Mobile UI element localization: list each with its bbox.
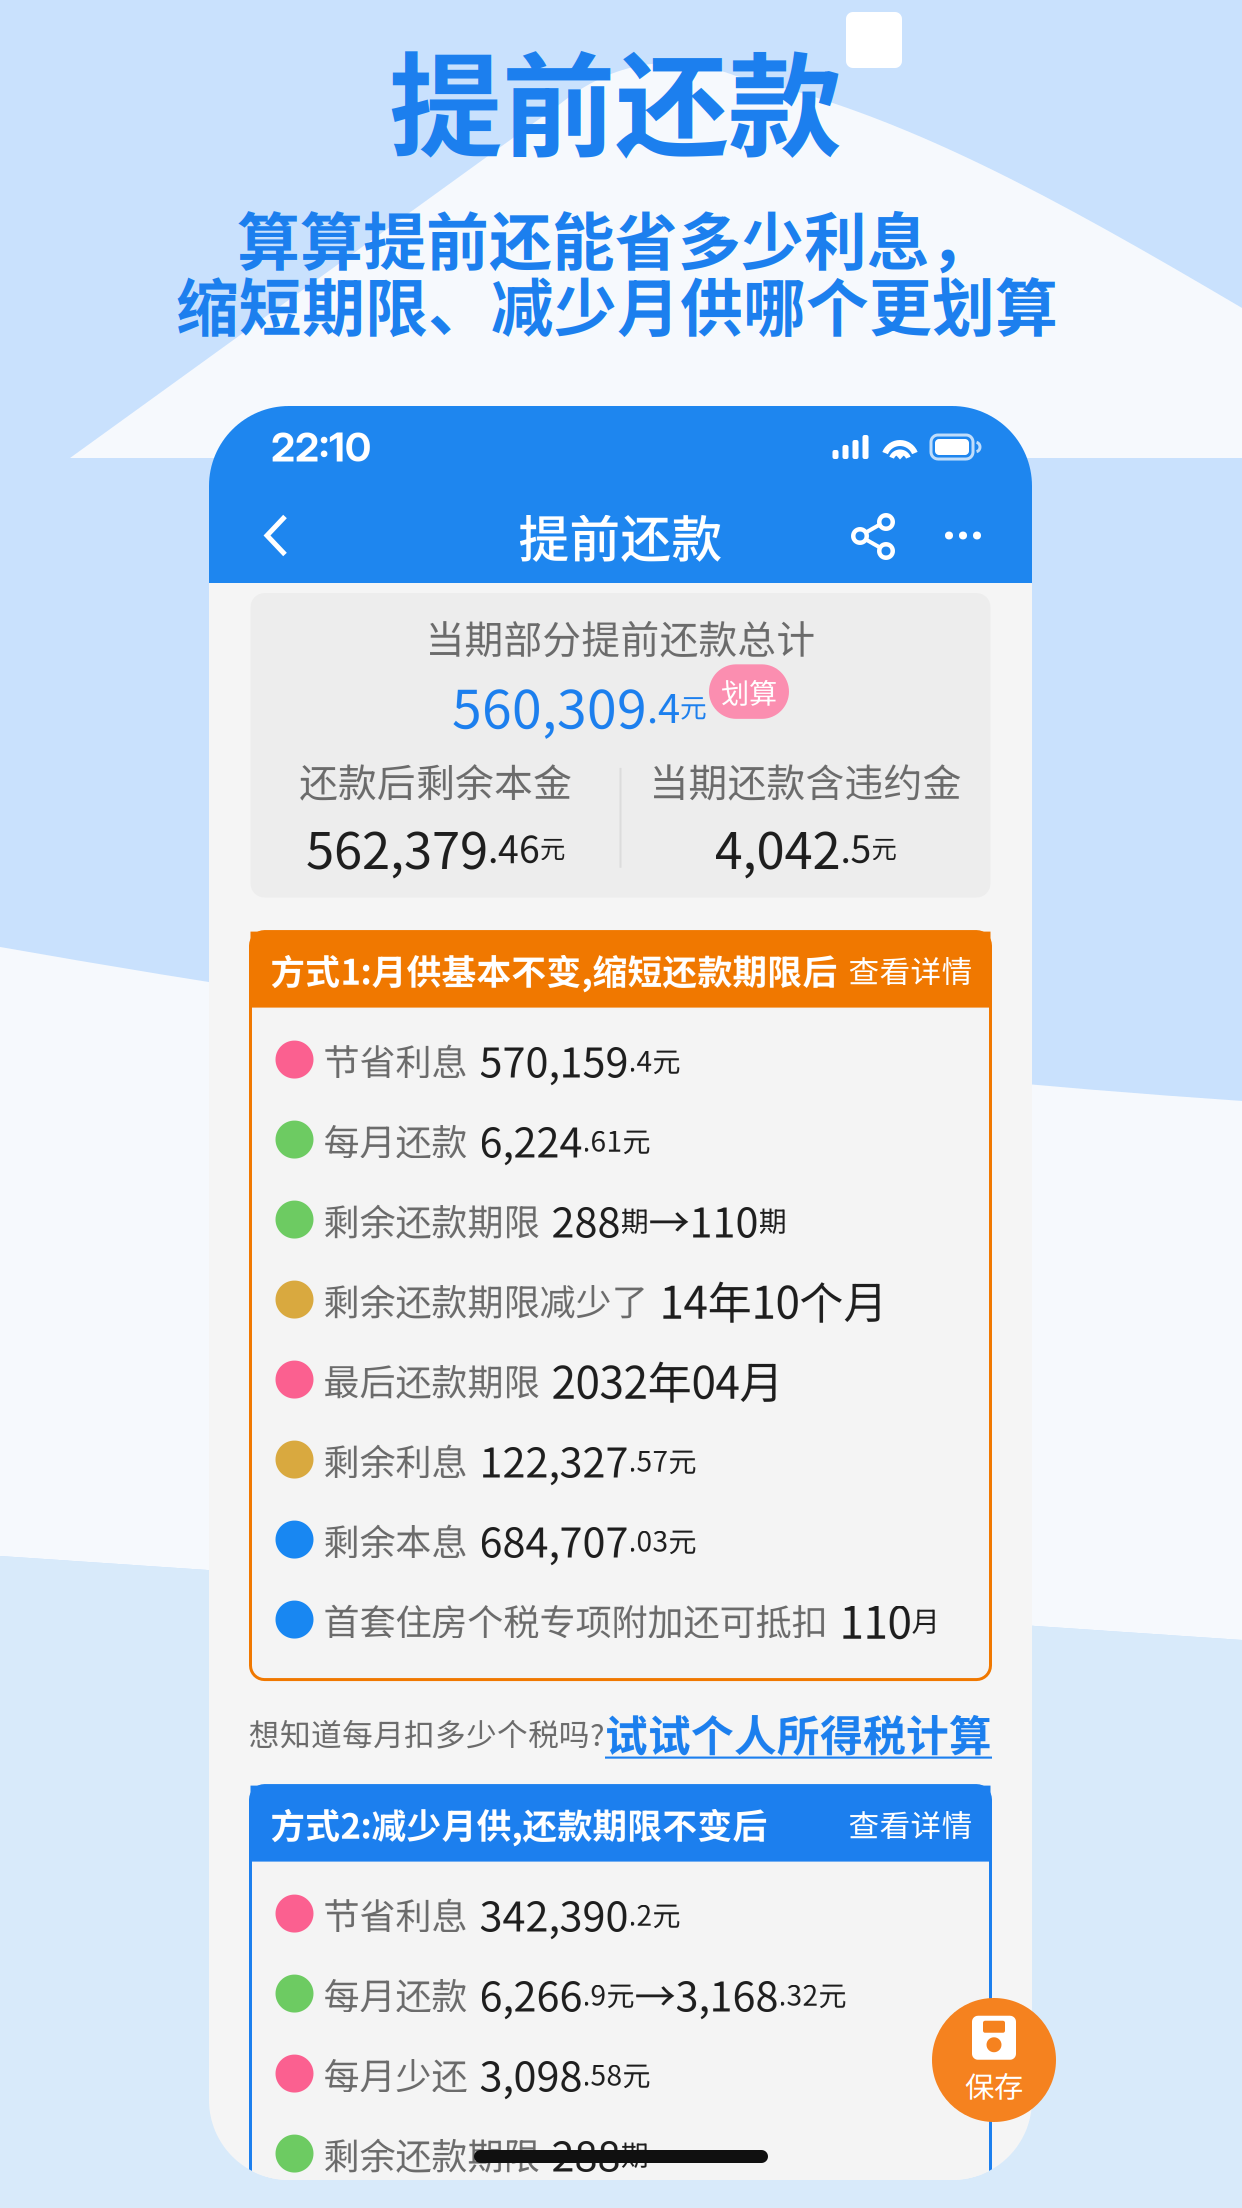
- staticText: .46: [488, 820, 540, 874]
- staticText: .9: [582, 1973, 606, 2014]
- staticText: 元: [652, 1893, 680, 1934]
- staticText: 元: [622, 1119, 650, 1160]
- staticText: 期: [620, 1199, 648, 1240]
- staticText: 方式2:减少月供,还款期限不变后: [270, 1798, 767, 1849]
- staticText: 最后还款期限: [323, 1353, 539, 1406]
- staticText: .4: [647, 677, 680, 734]
- staticText: 节省利息: [323, 1887, 467, 1940]
- staticText: 4,042: [714, 810, 840, 884]
- staticText: 剩余利息: [323, 1433, 467, 1486]
- staticText: 当期还款含违约金: [649, 752, 961, 808]
- staticText: 缩短期限、减少月供哪个更划算: [176, 258, 1058, 349]
- button[interactable]: 方式2:减少月供,还款期限不变后: [250, 1786, 990, 1862]
- staticText: 3,168: [675, 1964, 778, 2023]
- staticText: 剩余本息: [323, 1513, 467, 1566]
- staticText: 元: [818, 1973, 846, 2014]
- staticText: 期: [758, 1199, 786, 1240]
- staticText: 当期部分提前还款总计: [425, 609, 815, 665]
- staticText: 288: [551, 2124, 620, 2183]
- staticText: 570,159: [479, 1030, 628, 1089]
- staticText: .4: [628, 1039, 652, 1080]
- staticText: .03: [628, 1519, 668, 1560]
- staticText: .61: [582, 1119, 622, 1160]
- staticText: →: [648, 1190, 689, 1249]
- staticText: 算算提前还能省多少利息，: [237, 192, 993, 283]
- staticText: 110: [839, 1588, 911, 1651]
- staticText: 每月还款: [323, 1113, 467, 1166]
- button[interactable]: 更多: [918, 490, 1008, 580]
- staticText: 684,707: [479, 1510, 628, 1569]
- staticText: .32: [778, 1973, 818, 2014]
- button[interactable]: 方式1:月供基本不变,缩短还款期限后: [250, 932, 990, 1008]
- staticText: 14年10个月: [659, 1268, 887, 1331]
- staticText: 110: [689, 1190, 758, 1249]
- staticText: 每月还款: [323, 1967, 467, 2020]
- staticText: 提前还款: [389, 16, 841, 180]
- staticText: 122,327: [479, 1430, 628, 1489]
- staticText: 剩余还款期限: [323, 1193, 539, 1246]
- staticText: 2032年04月: [551, 1348, 783, 1411]
- staticText: .2: [628, 1893, 652, 1934]
- staticText: 562,379: [306, 810, 488, 884]
- staticText: 查看详情: [848, 947, 972, 992]
- staticText: 月: [911, 1599, 939, 1640]
- staticText: 22:10: [271, 423, 371, 471]
- staticText: 元: [540, 828, 565, 865]
- staticText: →: [634, 1964, 675, 2023]
- staticText: 560,309: [452, 667, 647, 744]
- button[interactable]: 试试个人所得税计算: [605, 1702, 992, 1763]
- staticText: 元: [668, 1519, 696, 1560]
- staticText: 6,266: [479, 1964, 582, 2023]
- staticText: 每月少还: [323, 2047, 467, 2100]
- staticText: 剩余还款期限: [323, 2127, 539, 2180]
- staticText: 288: [551, 1190, 620, 1249]
- staticText: 3,098: [479, 2044, 582, 2103]
- staticText: 剩余还款期限减少了: [323, 1273, 647, 1326]
- staticText: 元: [606, 1973, 634, 2014]
- staticText: 节省利息: [323, 1033, 467, 1086]
- staticText: 保存: [965, 2064, 1023, 2106]
- staticText: 方式1:月供基本不变,缩短还款期限后: [270, 944, 837, 995]
- staticText: 342,390: [479, 1884, 628, 1943]
- staticText: 划算: [721, 671, 777, 712]
- staticText: 首套住房个税专项附加还可抵扣: [323, 1593, 827, 1646]
- staticText: 元: [680, 686, 707, 725]
- staticText: 6,224: [479, 1110, 582, 1169]
- staticText: 元: [652, 1039, 680, 1080]
- staticText: .58: [582, 2053, 622, 2094]
- staticText: 元: [668, 1439, 696, 1480]
- staticText: .57: [628, 1439, 668, 1480]
- staticText: 试试个人所得税计算: [605, 1702, 992, 1763]
- button[interactable]: 保存: [932, 1998, 1056, 2122]
- button[interactable]: 返回: [231, 490, 321, 580]
- button[interactable]: 分享: [828, 490, 918, 580]
- staticText: 想知道每月扣多少个税吗?: [249, 1710, 605, 1755]
- staticText: 元: [871, 828, 896, 865]
- staticText: 元: [622, 2053, 650, 2094]
- staticText: 提前还款: [518, 499, 722, 572]
- staticText: .5: [840, 820, 871, 874]
- staticText: 查看详情: [848, 1801, 972, 1846]
- staticText: 期: [620, 2133, 648, 2174]
- staticText: 还款后剩余本金: [299, 752, 572, 808]
